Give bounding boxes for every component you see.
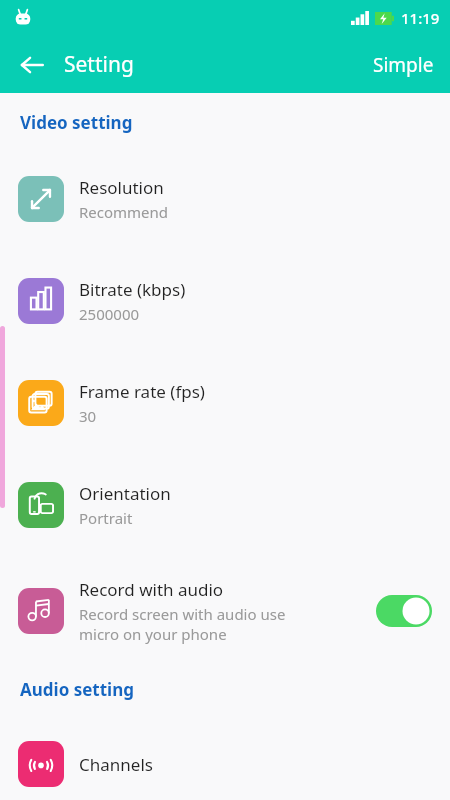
staticText: Orientation — [79, 482, 171, 505]
staticText: Simple — [373, 52, 434, 78]
button[interactable]: Record with audio — [0, 578, 450, 644]
button[interactable]: Channels — [0, 741, 450, 787]
staticText: Record screen with audio use micro on yo… — [79, 604, 286, 644]
staticText: Channels — [79, 753, 153, 776]
staticText: Bitrate (kbps) — [79, 278, 186, 301]
staticText: Portrait — [79, 508, 133, 528]
button[interactable]: Back — [10, 43, 54, 87]
staticText: Frame rate (fps) — [79, 380, 205, 403]
button[interactable]: Resolution — [0, 176, 450, 222]
button[interactable]: Record with audio toggle — [376, 595, 432, 627]
staticText: Setting — [64, 50, 134, 79]
staticText: Record with audio — [79, 578, 224, 601]
staticText: 30 — [79, 406, 97, 426]
staticText: Audio setting — [20, 678, 135, 701]
staticText: 2500000 — [79, 304, 140, 324]
button[interactable]: Orientation — [0, 482, 450, 528]
staticText: Video setting — [20, 111, 133, 134]
staticText: 11:19 — [401, 8, 440, 28]
staticText: Resolution — [79, 176, 164, 199]
button[interactable]: Frame rate (fps) — [0, 380, 450, 426]
staticText: Recommend — [79, 202, 169, 222]
button[interactable]: Bitrate (kbps) — [0, 278, 450, 324]
button[interactable]: Simple — [357, 42, 450, 88]
